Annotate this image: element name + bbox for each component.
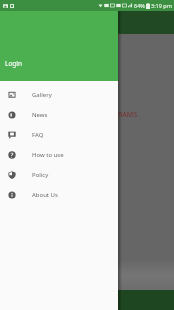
button[interactable]: Close navigation drawer [0, 0, 174, 310]
staticText: About Us [32, 191, 58, 199]
staticText: 3:19 pm [151, 2, 172, 9]
staticText: Login [5, 59, 23, 68]
staticText: News [32, 111, 48, 119]
button[interactable]: Login [0, 0, 118, 81]
staticText: How to use [32, 151, 64, 159]
button[interactable]: Policy [0, 165, 118, 185]
button[interactable]: FAQ [0, 125, 118, 145]
staticText: RAMS [118, 110, 138, 120]
button[interactable]: News [0, 105, 118, 125]
button[interactable]: Gallery [0, 85, 118, 105]
staticText: FAQ [32, 131, 44, 139]
staticText: 64% [134, 2, 145, 9]
staticText: Gallery [32, 91, 52, 99]
staticText: Policy [32, 171, 49, 179]
button[interactable]: How to use [0, 145, 118, 165]
button[interactable]: About Us [0, 185, 118, 205]
